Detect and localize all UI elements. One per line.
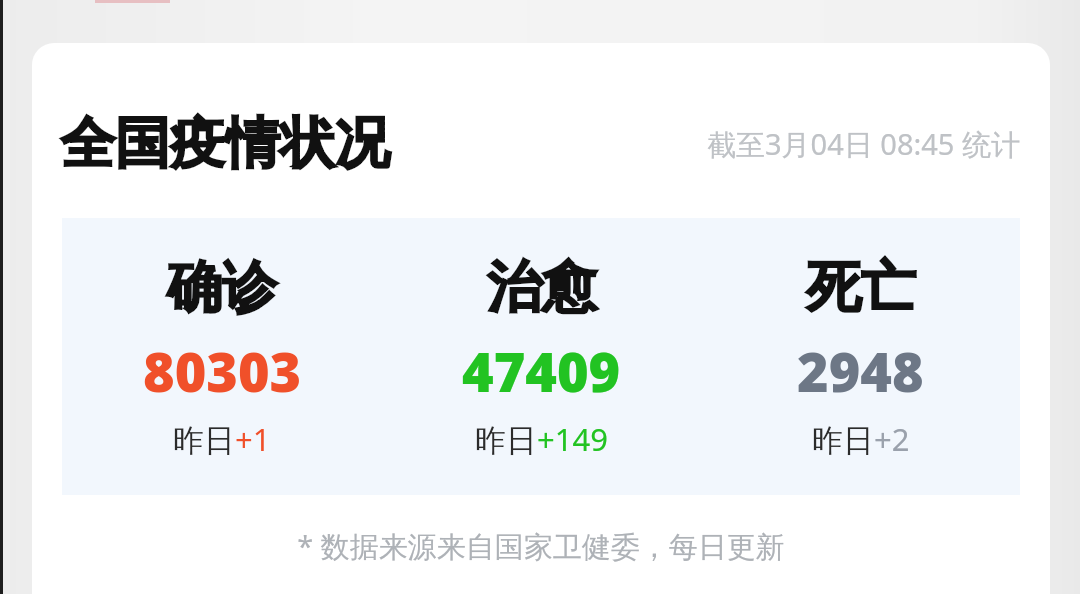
staticText: 截至3月04日 08:45 统计: [707, 124, 1020, 164]
staticText: 昨日+149: [475, 418, 608, 460]
button[interactable]: 死亡 2948 昨日+2: [701, 218, 1020, 495]
button[interactable]: 治愈 47409 昨日+149: [382, 218, 701, 495]
button[interactable]: 全国疫情状况: [32, 43, 1050, 594]
button[interactable]: 确诊 80303 昨日+1: [62, 218, 382, 495]
staticText: 昨日+1: [173, 418, 271, 460]
staticText: 治愈: [487, 253, 597, 322]
staticText: * 数据来源来自国家卫健委，每日更新: [297, 526, 785, 566]
staticText: 80303: [143, 334, 302, 408]
staticText: 2948: [797, 334, 924, 408]
staticText: 确诊: [167, 253, 277, 322]
staticText: 全国疫情状况: [60, 109, 390, 178]
staticText: 死亡: [806, 253, 916, 322]
staticText: 47409: [462, 334, 621, 408]
staticText: 昨日+2: [812, 418, 910, 460]
